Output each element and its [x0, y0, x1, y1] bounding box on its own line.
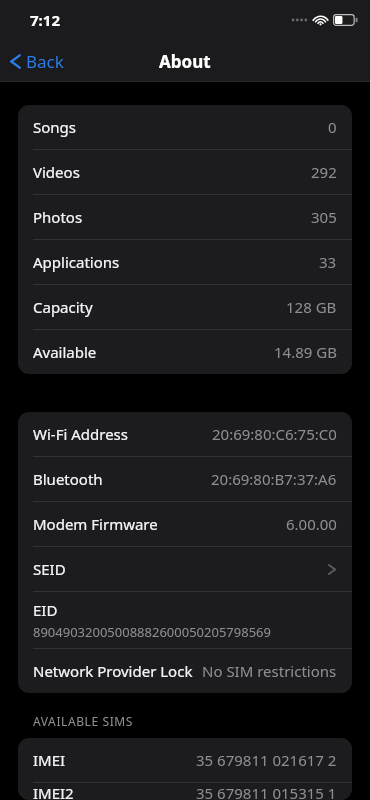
staticText: Photos — [33, 207, 83, 227]
staticText: Network Provider Lock — [33, 661, 193, 681]
button[interactable]: Photos — [18, 195, 352, 239]
staticText: 89049032005008882600050205798569 — [33, 623, 271, 641]
staticText: IMEI — [33, 750, 66, 770]
staticText: 20:69:80:B7:37:A6 — [211, 469, 337, 489]
staticText: Capacity — [33, 297, 93, 317]
staticText: 20:69:80:C6:75:C0 — [212, 424, 337, 444]
staticText: Modem Firmware — [33, 514, 158, 534]
staticText: Songs — [33, 117, 76, 137]
staticText: Back — [26, 50, 64, 73]
staticText: About — [159, 50, 211, 73]
staticText: Available — [33, 342, 97, 362]
button[interactable]: Back — [0, 44, 76, 79]
button[interactable]: Songs — [18, 105, 352, 149]
button[interactable]: EID — [18, 592, 352, 648]
button[interactable]: SEID — [18, 547, 352, 591]
staticText: Wi-Fi Address — [33, 424, 128, 444]
other: Open SEID — [328, 563, 336, 576]
staticText: IMEI2 — [33, 783, 74, 800]
staticText: SEID — [33, 559, 66, 579]
staticText: 6.00.00 — [286, 514, 337, 534]
button[interactable]: Applications — [18, 240, 352, 284]
staticText: AVAILABLE SIMS — [33, 713, 134, 729]
button[interactable]: IMEI2 — [18, 783, 352, 800]
button[interactable]: Available — [18, 330, 352, 374]
staticText: Videos — [33, 162, 80, 182]
staticText: 14.89 GB — [274, 342, 337, 362]
button[interactable]: Wi-Fi Address — [18, 412, 352, 456]
button[interactable]: Network Provider Lock — [18, 649, 352, 693]
staticText: 305 — [311, 207, 337, 227]
button[interactable]: Capacity — [18, 285, 352, 329]
staticText: 0 — [328, 117, 337, 137]
button[interactable]: Bluetooth — [18, 457, 352, 501]
button[interactable]: Videos — [18, 150, 352, 194]
button[interactable]: IMEI — [18, 738, 352, 782]
staticText: 35 679811 015315 1 — [196, 783, 337, 800]
staticText: 292 — [311, 162, 337, 182]
staticText: Bluetooth — [33, 469, 103, 489]
staticText: No SIM restrictions — [202, 661, 337, 681]
staticText: 35 679811 021617 2 — [196, 750, 337, 770]
button[interactable]: Modem Firmware — [18, 502, 352, 546]
staticText: 7:12 — [30, 10, 60, 30]
staticText: 128 GB — [286, 297, 337, 317]
staticText: 33 — [319, 252, 337, 272]
staticText: EID — [33, 600, 58, 620]
staticText: Applications — [33, 252, 120, 272]
